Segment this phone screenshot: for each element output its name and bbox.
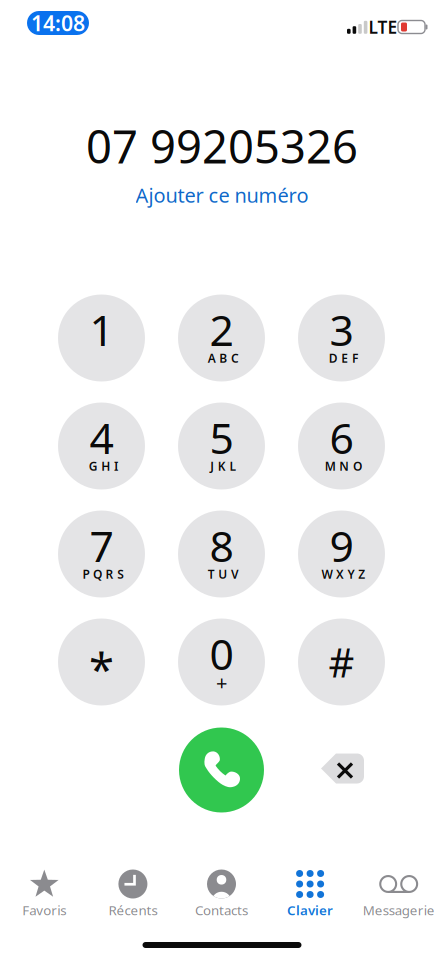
button[interactable]: 9 — [298, 510, 385, 597]
staticText: ABC — [208, 350, 239, 366]
staticText: 14:08 — [31, 9, 85, 37]
button[interactable]: 6 — [298, 402, 385, 489]
button[interactable]: Contacts — [177, 862, 266, 922]
staticText: 4 — [89, 409, 113, 466]
staticText: MNO — [325, 458, 362, 474]
button[interactable]: 8 — [178, 510, 265, 597]
button[interactable]: * — [58, 618, 145, 705]
staticText: Contacts — [195, 901, 248, 919]
button[interactable]: Appeler — [179, 727, 264, 812]
staticText: 7 — [89, 517, 113, 574]
staticText: LTE — [368, 15, 397, 38]
staticText: PQRS — [82, 566, 124, 582]
button[interactable]: Ajouter ce numéro — [122, 181, 322, 209]
staticText: + — [216, 669, 227, 696]
staticText: 5 — [209, 409, 233, 466]
staticText: GHI — [89, 458, 118, 474]
button[interactable]: # — [298, 618, 385, 705]
button[interactable]: 3 — [298, 294, 385, 381]
button[interactable]: 1 — [58, 294, 145, 381]
button[interactable]: 7 — [58, 510, 145, 597]
staticText: Clavier — [287, 901, 333, 919]
button[interactable]: Récents — [89, 862, 177, 922]
staticText: Récents — [108, 901, 157, 919]
staticText: 2 — [209, 301, 233, 358]
staticText: Favoris — [22, 901, 66, 919]
button[interactable]: Effacer — [314, 746, 370, 790]
button[interactable]: 5 — [178, 402, 265, 489]
button[interactable]: Favoris — [0, 862, 89, 922]
staticText: 1 — [89, 301, 113, 358]
staticText: # — [328, 635, 354, 688]
staticText: 07 99205326 — [86, 116, 358, 176]
button[interactable]: 2 — [178, 294, 265, 381]
staticText: 6 — [329, 409, 353, 466]
button[interactable]: Messagerie — [354, 862, 443, 922]
staticText: 3 — [329, 301, 353, 358]
button[interactable]: Clavier — [266, 862, 354, 922]
staticText: DEF — [329, 350, 358, 366]
staticText: TUV — [208, 566, 239, 582]
staticText: Messagerie — [363, 901, 435, 919]
button[interactable]: 4 — [58, 402, 145, 489]
staticText: Ajouter ce numéro — [135, 182, 308, 208]
button[interactable]: 0 — [178, 618, 265, 705]
staticText: * — [89, 639, 114, 699]
staticText: WXYZ — [321, 566, 365, 582]
staticText: 0 — [209, 625, 233, 682]
staticText: JKL — [210, 458, 236, 474]
staticText: 9 — [329, 517, 353, 574]
staticText: 8 — [209, 517, 233, 574]
